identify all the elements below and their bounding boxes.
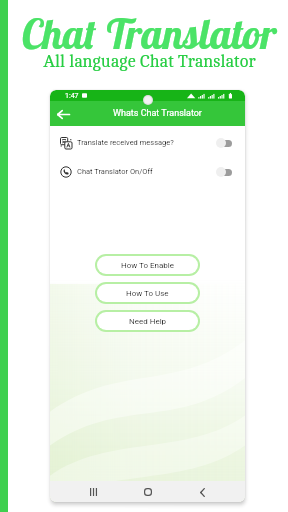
button[interactable]: Recent apps (84, 483, 102, 501)
staticText: 1:47 (65, 92, 79, 100)
button[interactable]: How To Enable (95, 254, 200, 276)
button[interactable]: Chat Translator On/Off (50, 157, 245, 186)
button[interactable]: Back (52, 103, 74, 125)
button[interactable]: How To Use (95, 282, 200, 304)
button[interactable]: Home (139, 483, 157, 501)
button[interactable]: Toggle (216, 138, 232, 148)
staticText: Chat Translator On/Off (77, 167, 153, 176)
staticText: All language Chat Translator (43, 52, 256, 71)
button[interactable]: Back (193, 483, 211, 501)
staticText: Whats Chat Translator (113, 108, 202, 119)
button[interactable]: Toggle (216, 167, 232, 177)
button[interactable]: Need Help (95, 310, 200, 332)
staticText: How To Enable (121, 261, 175, 270)
staticText: Need Help (129, 317, 167, 326)
staticText: Translate received message? (77, 138, 174, 147)
button[interactable]: Translate received message? (50, 128, 245, 157)
staticText: Chat Translator (21, 8, 276, 59)
staticText: How To Use (126, 289, 169, 298)
